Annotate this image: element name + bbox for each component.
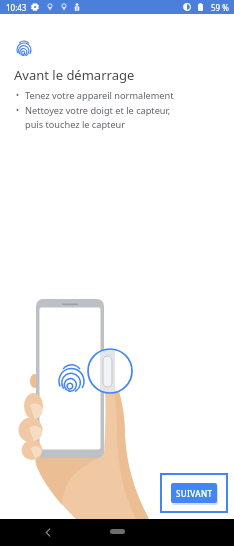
staticText: • bbox=[16, 104, 20, 115]
staticText: Avant le démarrage bbox=[14, 66, 135, 84]
staticText: SUIVANT bbox=[176, 488, 213, 499]
button[interactable]: SUIVANT bbox=[171, 483, 217, 503]
staticText: Nettoyez votre doigt et le capteur, puis… bbox=[25, 104, 171, 131]
button[interactable]: Back bbox=[39, 524, 57, 542]
staticText: Tenez votre appareil normalement bbox=[25, 89, 174, 102]
staticText: • bbox=[16, 89, 20, 100]
staticText: 10:43 bbox=[6, 2, 27, 13]
staticText: 59 % bbox=[211, 2, 229, 13]
button[interactable]: Home bbox=[110, 529, 125, 534]
